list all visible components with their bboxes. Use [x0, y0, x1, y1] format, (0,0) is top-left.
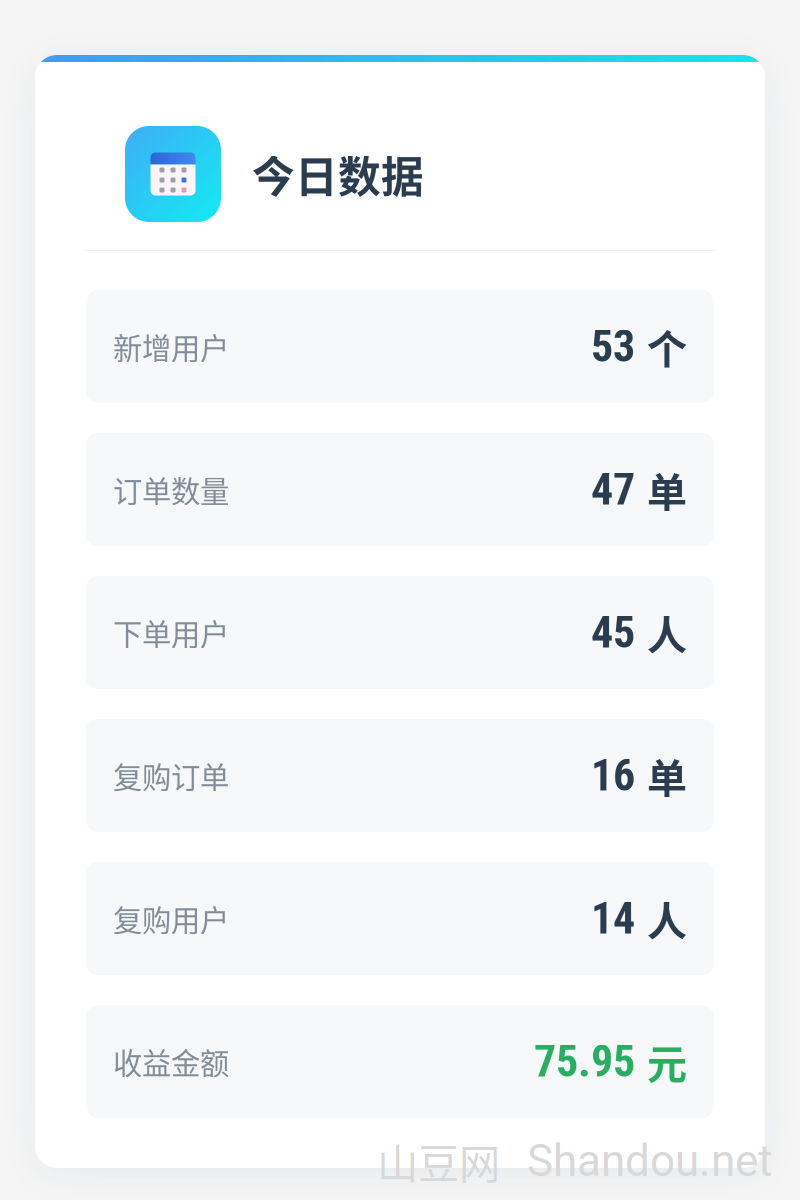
- staticText: 元: [647, 1032, 687, 1090]
- staticText: 14: [591, 893, 635, 944]
- staticText: 复购用户: [113, 897, 229, 940]
- button[interactable]: 复购订单: [86, 719, 714, 832]
- staticText: 山豆网: [377, 1131, 500, 1191]
- staticText: 45: [591, 607, 635, 658]
- staticText: Shandou.net: [527, 1135, 772, 1187]
- button[interactable]: 复购用户: [86, 862, 714, 975]
- staticText: 下单用户: [113, 611, 229, 654]
- staticText: 新增用户: [113, 325, 229, 368]
- button[interactable]: 下单用户: [86, 576, 714, 689]
- staticText: 53: [591, 321, 635, 372]
- staticText: 75.95: [534, 1036, 635, 1087]
- staticText: 订单数量: [113, 468, 229, 511]
- staticText: 收益金额: [113, 1040, 229, 1083]
- button[interactable]: 今日数据: [35, 126, 765, 222]
- button[interactable]: 收益金额: [86, 1005, 714, 1118]
- button[interactable]: 新增用户: [86, 290, 714, 403]
- staticText: 复购订单: [113, 754, 229, 797]
- staticText: 人: [647, 889, 687, 947]
- staticText: 47: [591, 464, 635, 515]
- staticText: 16: [591, 750, 635, 801]
- staticText: 单: [647, 746, 687, 804]
- staticText: 单: [647, 460, 687, 518]
- staticText: 个: [647, 317, 687, 375]
- staticText: 人: [647, 603, 687, 661]
- button[interactable]: 订单数量: [86, 433, 714, 546]
- staticText: 今日数据: [252, 143, 424, 205]
